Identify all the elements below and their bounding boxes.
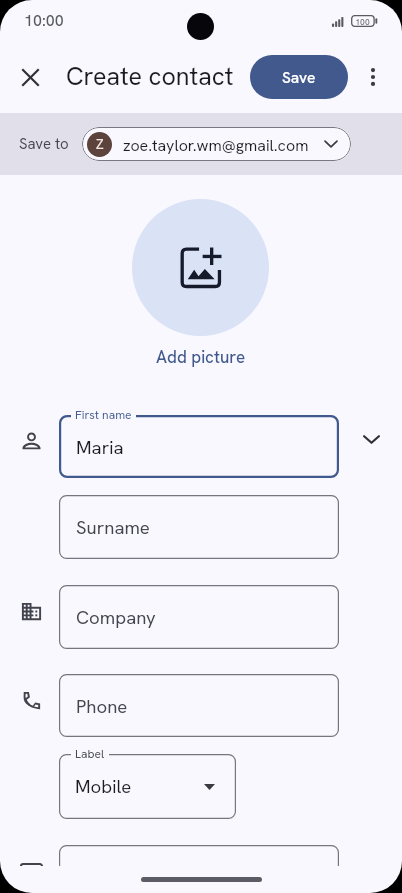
staticText: First name <box>75 407 132 423</box>
other: Email <box>20 863 43 866</box>
staticText: zoe.taylor.wm@gmail.com <box>123 135 309 156</box>
staticText: Mobile <box>75 774 132 798</box>
staticText: Save to <box>19 134 69 154</box>
other: Phone <box>20 689 43 712</box>
button[interactable]: Phone <box>59 674 339 737</box>
button[interactable]: Expand name fields <box>349 417 393 461</box>
staticText: Company <box>76 605 156 629</box>
button[interactable]: Save <box>250 55 348 99</box>
button[interactable]: Surname <box>59 495 339 559</box>
staticText: Phone <box>76 694 128 718</box>
staticText: Z <box>96 136 104 153</box>
staticText: Maria <box>76 435 124 459</box>
button[interactable]: Add picture <box>156 346 246 368</box>
other: Name <box>20 430 43 453</box>
button[interactable]: More options <box>351 55 395 99</box>
button[interactable] <box>59 845 339 866</box>
other: Company <box>20 600 43 623</box>
staticText: Label <box>75 746 105 762</box>
staticText: 100 <box>351 16 374 27</box>
staticText: Save <box>282 67 316 87</box>
staticText: 10:00 <box>24 10 64 31</box>
button[interactable]: First name <box>59 415 339 478</box>
button[interactable]: Close <box>6 53 55 102</box>
staticText: Surname <box>76 515 150 539</box>
button[interactable]: Add picture <box>132 199 269 336</box>
button[interactable]: Company <box>59 585 339 649</box>
button[interactable]: Z <box>82 127 351 161</box>
staticText: Create contact <box>66 60 234 93</box>
button[interactable]: Label <box>59 754 236 819</box>
